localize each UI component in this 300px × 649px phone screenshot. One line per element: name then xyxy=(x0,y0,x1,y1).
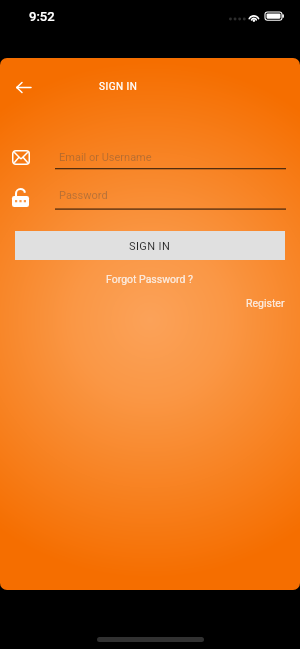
button[interactable]: Forgot Password ? xyxy=(100,271,200,287)
staticText: SIGN IN xyxy=(129,240,171,253)
staticText: Forgot Password ? xyxy=(106,273,194,285)
staticText: 9:52 xyxy=(29,9,55,24)
button[interactable]: Register xyxy=(240,295,291,311)
staticText: Register xyxy=(246,297,285,309)
staticText: Email or Username xyxy=(59,151,152,164)
button[interactable]: Back xyxy=(8,72,38,102)
staticText: SIGN IN xyxy=(99,81,138,93)
button[interactable]: SIGN IN xyxy=(15,231,285,260)
staticText: Password xyxy=(59,189,108,202)
